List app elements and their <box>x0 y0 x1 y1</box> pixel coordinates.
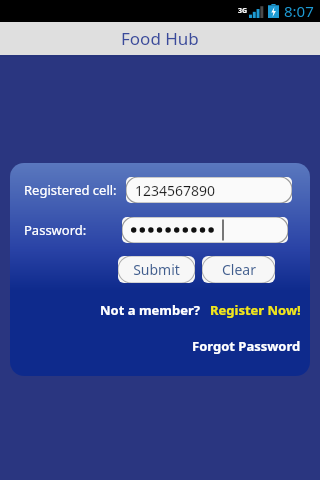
button[interactable]: Forgot Password <box>192 337 301 355</box>
staticText: Forgot Password <box>192 337 301 355</box>
button[interactable]: Register Now! <box>210 301 301 319</box>
staticText: Not a member? <box>100 301 200 319</box>
staticText: 3G <box>238 6 248 16</box>
staticText: 1234567890 <box>135 181 216 200</box>
staticText: Register Now! <box>210 301 301 319</box>
button[interactable]: Registered cell input <box>126 177 292 203</box>
staticText: Clear <box>222 260 256 279</box>
button[interactable]: Password input <box>122 217 288 243</box>
button[interactable]: Clear <box>202 256 275 283</box>
button[interactable]: Not a member? <box>100 301 200 319</box>
staticText: 8:07 <box>284 1 314 21</box>
staticText: Password: <box>24 221 87 239</box>
staticText: Food Hub <box>121 27 199 50</box>
staticText: Registered cell: <box>24 181 117 199</box>
button[interactable]: Submit <box>118 256 195 283</box>
staticText: Submit <box>133 260 180 279</box>
